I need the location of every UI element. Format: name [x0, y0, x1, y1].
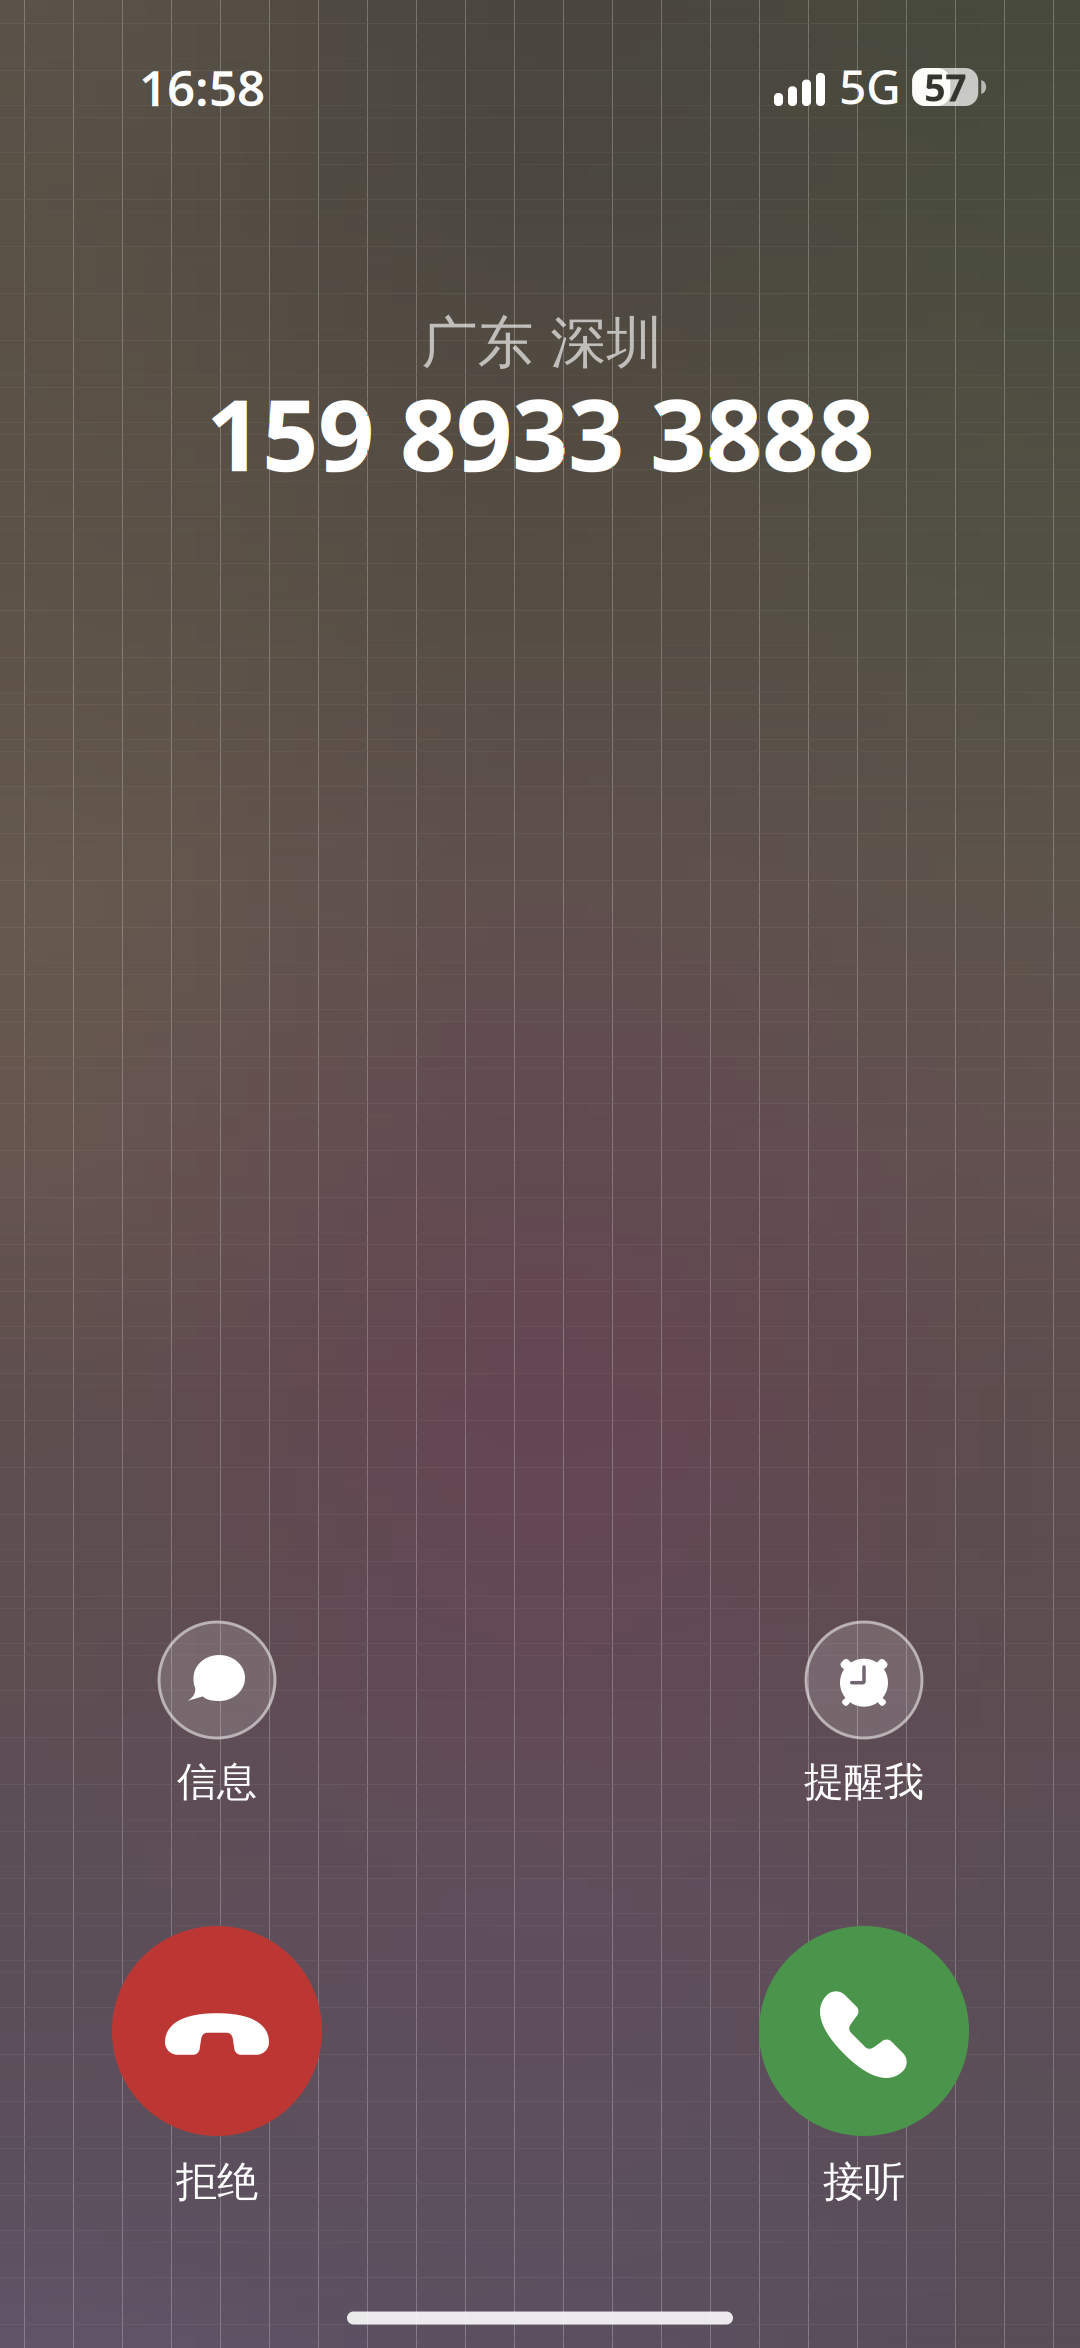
button[interactable]: 拒绝: [77, 1926, 357, 2204]
staticText: 接听: [823, 2157, 905, 2207]
staticText: 57: [924, 62, 966, 112]
staticText: 拒绝: [176, 2157, 258, 2207]
button[interactable]: 信息: [87, 1621, 347, 1803]
staticText: 16:58: [139, 54, 265, 120]
button[interactable]: 提醒我: [734, 1621, 994, 1803]
staticText: 信息: [177, 1757, 257, 1806]
staticText: 159 8933 3888: [206, 367, 874, 498]
staticText: 提醒我: [804, 1757, 924, 1806]
staticText: 广东 深圳: [421, 309, 662, 377]
button[interactable]: 接听: [724, 1926, 1004, 2204]
staticText: 5G: [839, 54, 901, 118]
